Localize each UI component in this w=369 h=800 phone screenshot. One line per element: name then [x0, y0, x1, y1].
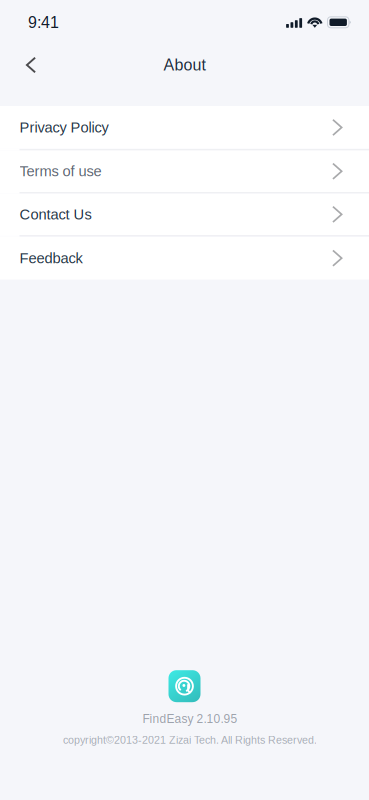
button[interactable]: Contact Us [0, 194, 369, 235]
staticText: FindEasy 2.10.95 [142, 712, 237, 726]
button[interactable]: Terms of use [0, 150, 369, 192]
staticText: copyright©2013-2021 Zizai Tech. All Righ… [63, 734, 317, 746]
staticText: Privacy Policy [20, 119, 109, 136]
staticText: Terms of use [20, 163, 102, 179]
staticText: About [163, 56, 205, 74]
staticText: Feedback [20, 250, 83, 266]
button[interactable]: Privacy Policy [0, 106, 369, 149]
staticText: 9:41 [28, 14, 59, 31]
staticText: Contact Us [20, 206, 92, 223]
button[interactable]: Feedback [0, 237, 369, 280]
button[interactable]: Back [9, 43, 53, 87]
